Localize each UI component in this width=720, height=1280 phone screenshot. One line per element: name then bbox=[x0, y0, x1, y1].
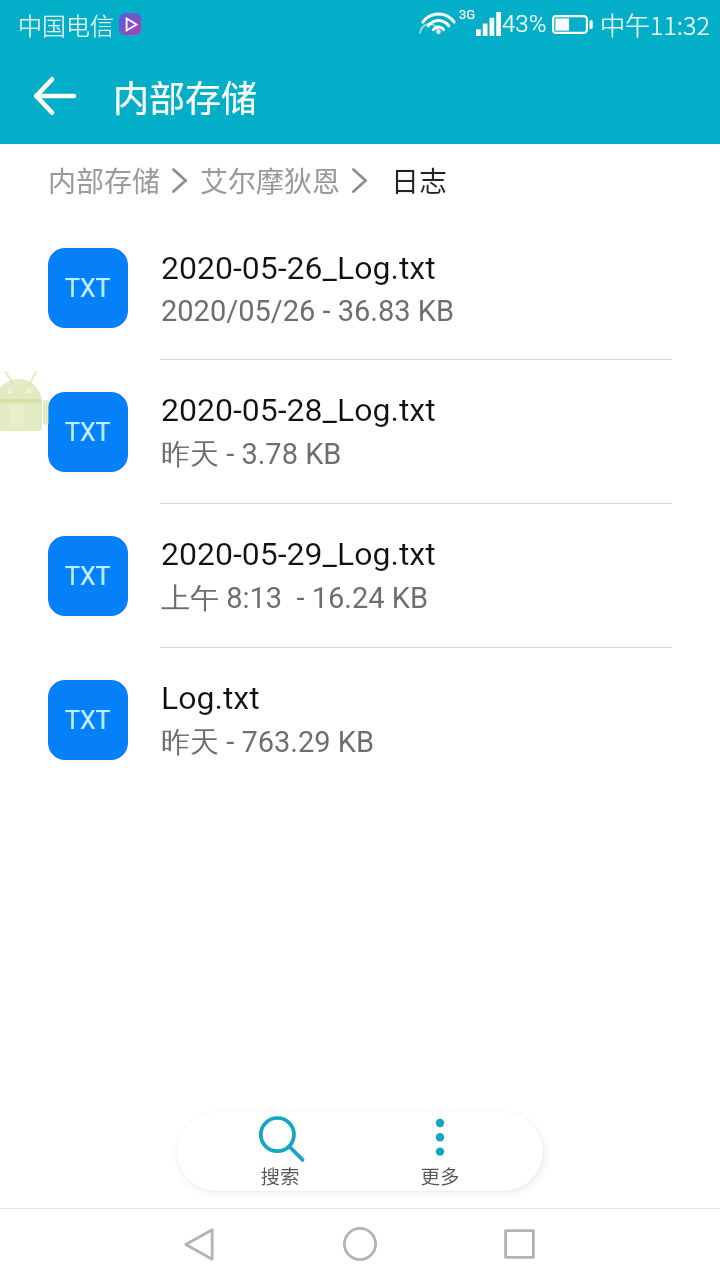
staticText: 上午 8:13 - 16.24 KB bbox=[161, 580, 429, 617]
staticText: Log.txt bbox=[161, 679, 260, 717]
staticText: 中午11:32 bbox=[600, 6, 710, 42]
button[interactable]: Recents bbox=[474, 1208, 564, 1280]
button[interactable]: 日志 bbox=[391, 160, 448, 201]
button[interactable]: 搜索 bbox=[200, 1112, 360, 1191]
button[interactable]: TXT bbox=[0, 504, 720, 648]
staticText: 内部存储 bbox=[113, 70, 258, 122]
staticText: 43% bbox=[502, 10, 547, 38]
button[interactable]: 内部存储 bbox=[48, 160, 161, 201]
staticText: TXT bbox=[65, 706, 111, 735]
staticText: 搜索 bbox=[260, 1161, 300, 1189]
button[interactable]: TXT bbox=[0, 216, 720, 360]
staticText: 更多 bbox=[420, 1161, 460, 1189]
staticText: TXT bbox=[65, 418, 111, 447]
staticText: 昨天 - 3.78 KB bbox=[161, 436, 342, 473]
staticText: 昨天 - 763.29 KB bbox=[161, 724, 374, 761]
button[interactable]: Back bbox=[154, 1208, 244, 1280]
staticText: 3G bbox=[459, 7, 476, 22]
button[interactable]: 艾尔摩狄恩 bbox=[200, 160, 341, 201]
button[interactable]: TXT bbox=[0, 360, 720, 504]
staticText: 2020/05/26 - 36.83 KB bbox=[161, 294, 455, 328]
button[interactable]: Home bbox=[315, 1208, 405, 1280]
staticText: 中国电信 bbox=[18, 7, 114, 42]
staticText: 2020-05-26_Log.txt bbox=[161, 249, 436, 287]
button[interactable]: TXT bbox=[0, 648, 720, 792]
staticText: 2020-05-29_Log.txt bbox=[161, 535, 436, 573]
button[interactable]: 更多 bbox=[360, 1112, 520, 1191]
staticText: 2020-05-28_Log.txt bbox=[161, 391, 436, 429]
button[interactable]: Back bbox=[0, 48, 96, 144]
staticText: TXT bbox=[65, 274, 111, 303]
staticText: TXT bbox=[65, 562, 111, 591]
